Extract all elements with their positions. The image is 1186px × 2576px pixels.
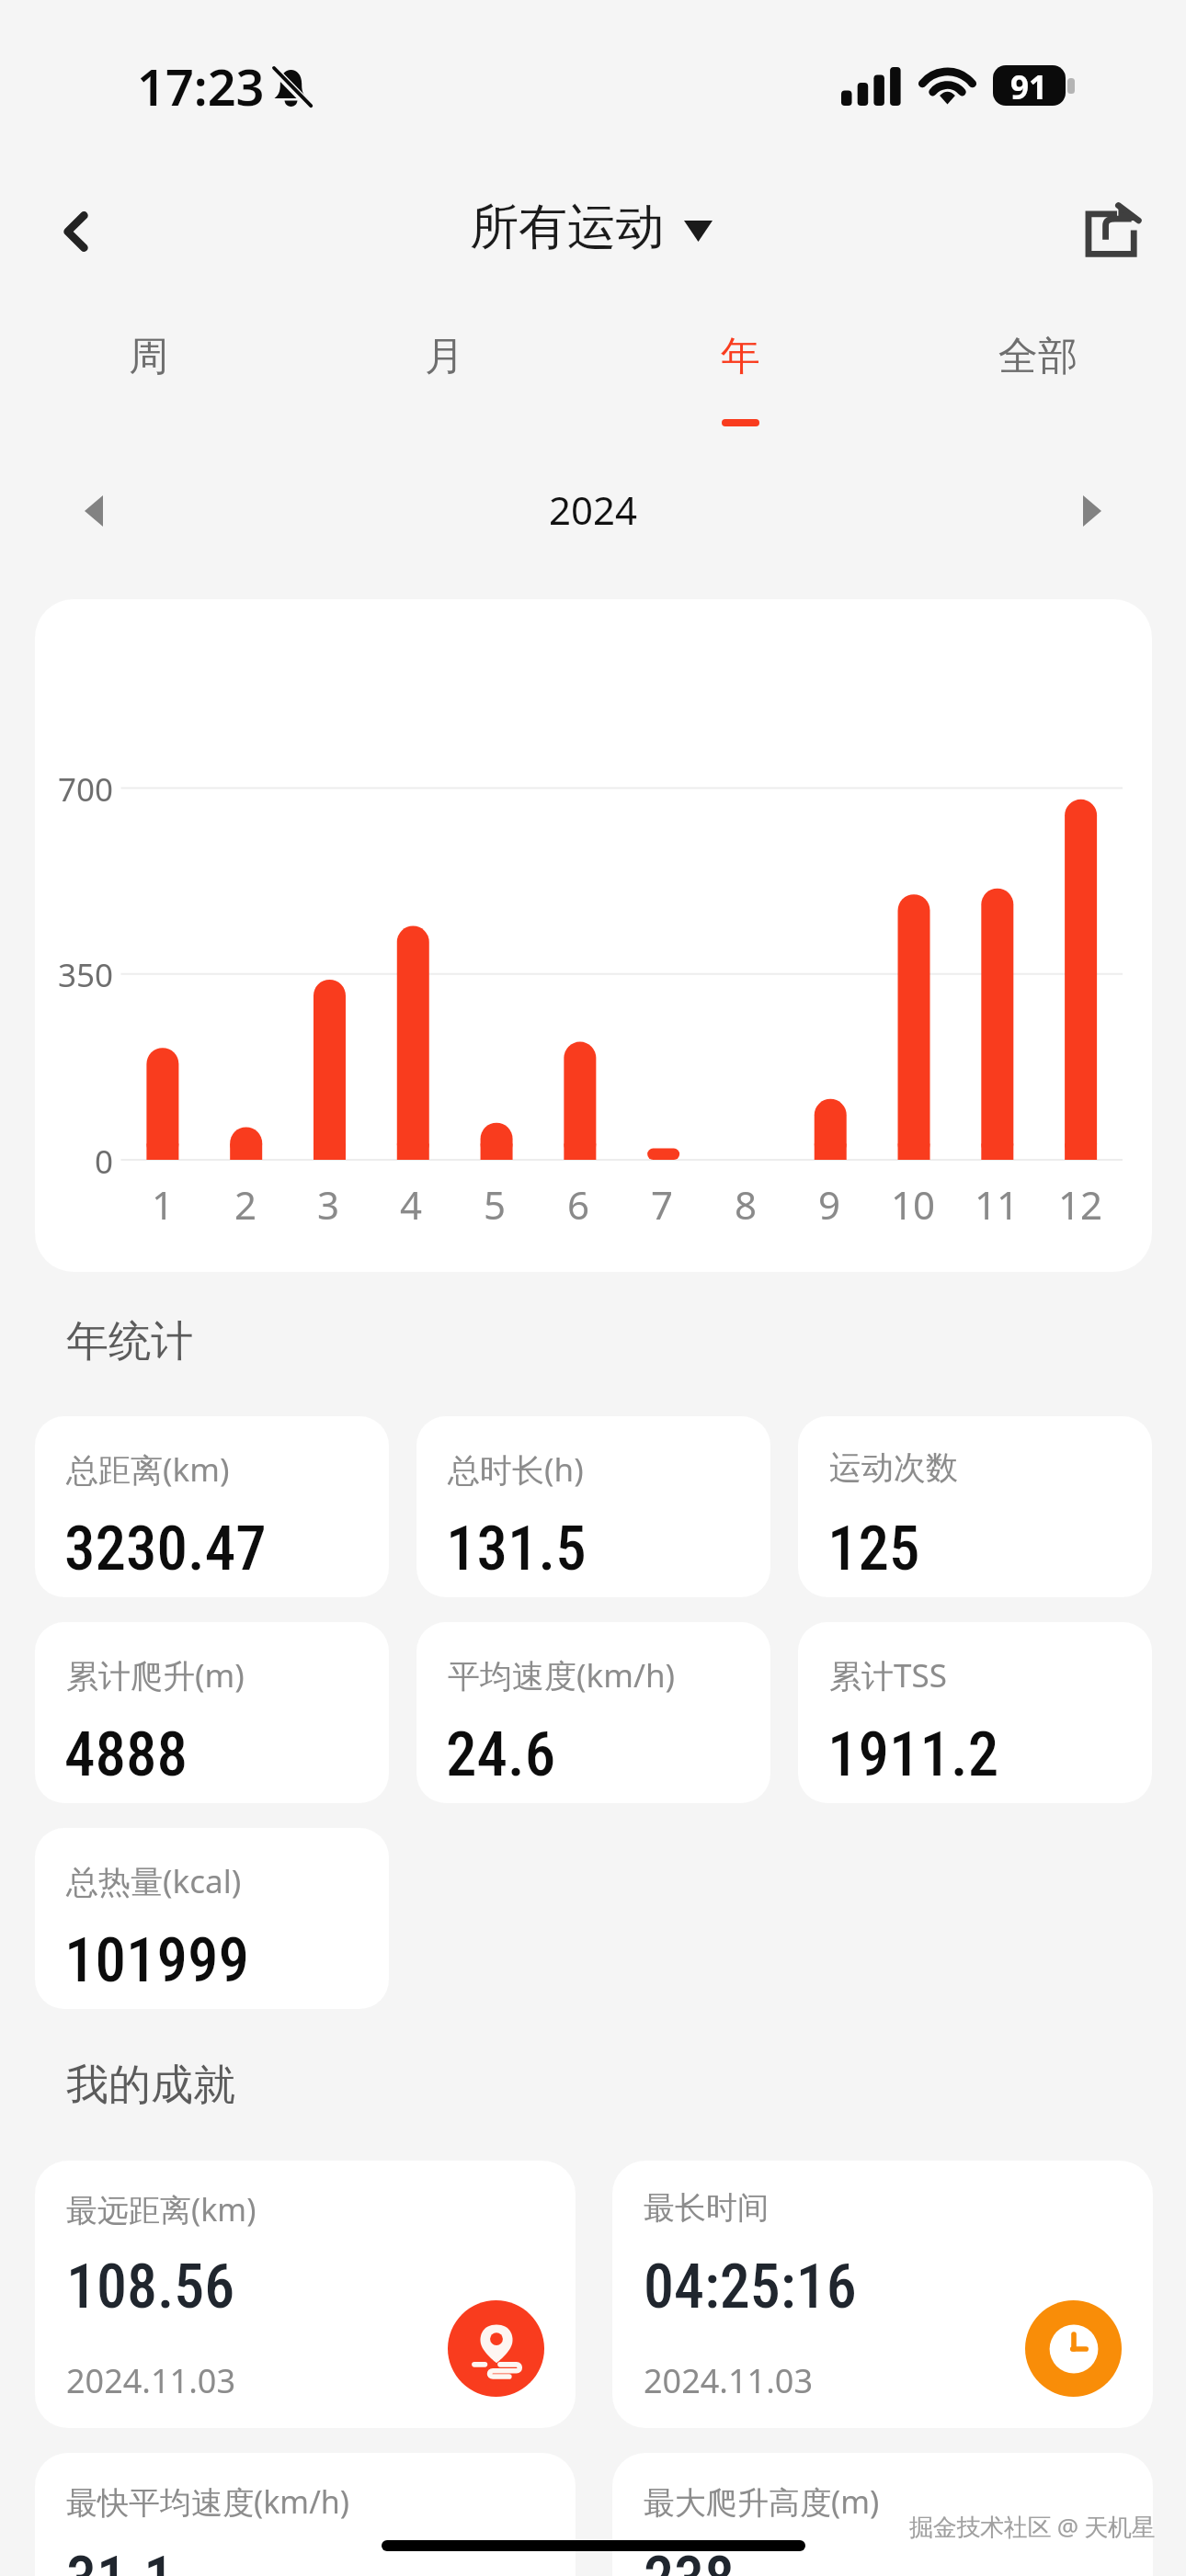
button[interactable]: 最长时间: [612, 2161, 1153, 2428]
button[interactable]: 最快平均速度(km/h): [35, 2453, 576, 2576]
staticText: 月: [425, 332, 464, 381]
button[interactable]: Next year: [1046, 465, 1138, 557]
staticText: 2024.11.03: [644, 2358, 814, 2403]
staticText: 最长时间: [644, 2188, 769, 2228]
button[interactable]: 年: [592, 332, 889, 437]
staticText: 108.56: [66, 2252, 235, 2322]
staticText: 2024.11.03: [66, 2358, 236, 2403]
staticText: 10: [891, 1178, 936, 1231]
button[interactable]: 平均速度(km/h): [416, 1622, 770, 1803]
button[interactable]: 最远距离(km): [35, 2161, 576, 2428]
staticText: 最远距离(km): [66, 2188, 257, 2230]
staticText: 3: [317, 1178, 340, 1231]
staticText: 4888: [64, 1719, 188, 1791]
staticText: 0: [95, 1140, 114, 1184]
staticText: 累计TSS: [829, 1653, 947, 1697]
button[interactable]: 最大爬升高度(m): [612, 2453, 1153, 2576]
staticText: 6: [567, 1178, 590, 1231]
staticText: 131.5: [446, 1513, 587, 1585]
staticText: 24.6: [446, 1719, 556, 1791]
staticText: 9: [818, 1178, 841, 1231]
staticText: 总热量(kcal): [66, 1859, 242, 1903]
staticText: 我的成就: [66, 2059, 235, 2112]
staticText: 1: [152, 1178, 175, 1231]
staticText: 掘金技术社区 @ 天机星: [909, 2510, 1156, 2543]
button[interactable]: 总距离(km): [35, 1416, 389, 1597]
button[interactable]: 全部: [889, 332, 1186, 437]
staticText: 总距离(km): [66, 1447, 230, 1492]
staticText: 2024: [549, 483, 638, 536]
button[interactable]: 累计TSS: [798, 1622, 1152, 1803]
staticText: 31.1: [66, 2544, 175, 2576]
staticText: 3230.47: [64, 1513, 267, 1585]
staticText: 7: [651, 1178, 674, 1231]
staticText: 年: [721, 332, 760, 381]
staticText: 11: [975, 1178, 1020, 1231]
staticText: 运动次数: [829, 1447, 958, 1488]
staticText: 4: [400, 1178, 423, 1231]
staticText: 238: [644, 2544, 735, 2576]
staticText: 700: [58, 767, 114, 811]
staticText: 平均速度(km/h): [448, 1653, 676, 1697]
staticText: 125: [827, 1513, 920, 1585]
staticText: 最快平均速度(km/h): [66, 2480, 350, 2523]
staticText: 总时长(h): [448, 1447, 584, 1492]
staticText: 5: [484, 1178, 507, 1231]
button[interactable]: Previous year: [48, 465, 140, 557]
staticText: 最大爬升高度(m): [644, 2480, 880, 2523]
staticText: 12: [1058, 1178, 1103, 1231]
button[interactable]: Back: [28, 183, 124, 279]
button[interactable]: 累计爬升(m): [35, 1622, 389, 1803]
button[interactable]: 运动次数: [798, 1416, 1152, 1597]
staticText: 91: [1010, 65, 1048, 106]
staticText: 2: [234, 1178, 257, 1231]
staticText: 全部: [998, 332, 1078, 381]
button[interactable]: 总热量(kcal): [35, 1828, 389, 2009]
staticText: 101999: [64, 1924, 249, 1997]
button[interactable]: 所有运动: [453, 189, 727, 266]
staticText: 1911.2: [827, 1719, 999, 1791]
staticText: 年统计: [66, 1315, 193, 1368]
staticText: 17:23: [137, 52, 265, 120]
button[interactable]: 总时长(h): [416, 1416, 770, 1597]
staticText: 所有运动: [470, 197, 665, 258]
staticText: 累计爬升(m): [66, 1653, 245, 1697]
button[interactable]: 周: [0, 332, 296, 437]
staticText: 350: [58, 953, 114, 997]
staticText: 周: [129, 332, 168, 381]
button[interactable]: Share: [1064, 186, 1160, 282]
button[interactable]: 月: [296, 332, 592, 437]
staticText: 04:25:16: [644, 2252, 857, 2322]
staticText: 8: [735, 1178, 758, 1231]
